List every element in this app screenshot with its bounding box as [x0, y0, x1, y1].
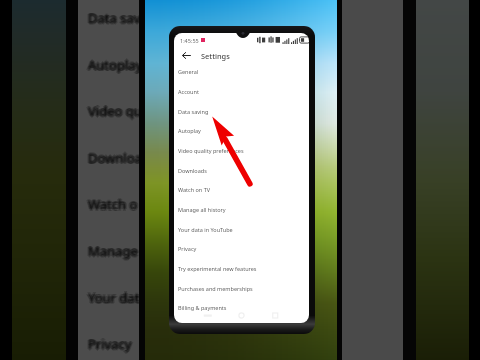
staticText: Your dat: [89, 289, 141, 307]
staticText: Video qu: [89, 103, 143, 121]
staticText: Data sav: [89, 9, 142, 27]
staticText: Video qu: [88, 103, 142, 121]
staticText: Your dat: [87, 287, 139, 305]
staticText: Data sav: [88, 8, 141, 26]
staticText: Data sav: [89, 8, 142, 26]
staticText: Video qu: [87, 101, 141, 119]
button[interactable]: Try experimental new features: [174, 258, 309, 278]
staticText: Data sav: [86, 9, 139, 27]
staticText: Your dat: [88, 287, 140, 305]
staticText: Manage: [89, 242, 139, 260]
staticText: Your dat: [90, 289, 142, 307]
staticText: Watch o: [89, 195, 139, 213]
button[interactable]: Billing & payments: [174, 297, 309, 317]
staticText: Your dat: [88, 289, 140, 307]
staticText: Video qu: [89, 101, 143, 119]
staticText: Video qu: [87, 102, 141, 120]
staticText: Your dat: [88, 290, 140, 308]
staticText: Autoplay: [88, 54, 143, 72]
staticText: Manage: [88, 244, 138, 262]
staticText: Privacy: [87, 334, 131, 352]
staticText: Billing & payments: [178, 304, 227, 311]
staticText: 1:45:55: [180, 37, 199, 44]
staticText: Downloa: [87, 148, 141, 166]
staticText: Your dat: [88, 288, 140, 306]
button[interactable]: Account: [174, 81, 309, 101]
staticText: Data sav: [88, 9, 141, 27]
staticText: Purchases and memberships: [178, 285, 253, 292]
staticText: Video qu: [86, 102, 140, 120]
staticText: Privacy: [178, 245, 197, 252]
staticText: Data sav: [88, 10, 141, 28]
staticText: Manage: [88, 241, 138, 259]
staticText: Autoplay: [87, 56, 142, 74]
staticText: Autoplay: [90, 56, 145, 74]
button[interactable]: Downloads: [174, 160, 309, 180]
staticText: Your data in YouTube: [178, 226, 233, 233]
staticText: Watch o: [86, 195, 136, 213]
staticText: Data sav: [88, 8, 141, 26]
staticText: Watch o: [87, 195, 137, 213]
button[interactable]: Purchases and memberships: [174, 278, 309, 298]
staticText: Autoplay: [178, 127, 201, 134]
staticText: Data sav: [88, 11, 141, 29]
staticText: Manage: [88, 243, 138, 261]
staticText: Autoplay: [88, 56, 143, 74]
staticText: Downloa: [88, 149, 142, 167]
staticText: Data sav: [87, 10, 140, 28]
staticText: Video qu: [88, 101, 142, 119]
staticText: Watch o: [87, 197, 137, 215]
staticText: Manage: [87, 242, 137, 260]
staticText: Downloa: [88, 150, 142, 168]
staticText: Your dat: [89, 290, 141, 308]
button[interactable]: Privacy: [174, 238, 309, 258]
staticText: Your dat: [86, 289, 138, 307]
staticText: Watch o: [89, 197, 139, 215]
staticText: Your dat: [87, 290, 139, 308]
button[interactable]: Back: [179, 48, 194, 63]
button[interactable]: Data saving: [174, 101, 309, 121]
staticText: Watch o: [87, 194, 137, 212]
staticText: Autoplay: [88, 55, 143, 73]
button[interactable]: General: [174, 61, 309, 81]
staticText: Downloa: [89, 150, 143, 168]
staticText: Privacy: [89, 335, 133, 353]
staticText: Manage: [88, 242, 138, 260]
staticText: Downloa: [89, 148, 143, 166]
button[interactable]: Video quality preferences: [174, 140, 309, 160]
staticText: General: [178, 68, 199, 75]
staticText: Downloa: [86, 149, 140, 167]
staticText: Manage all history: [178, 206, 226, 213]
staticText: Watch o: [88, 197, 138, 215]
staticText: Privacy: [87, 336, 131, 354]
staticText: Privacy: [86, 335, 130, 353]
staticText: Watch o: [89, 194, 139, 212]
staticText: Downloa: [88, 150, 142, 168]
staticText: Manage: [90, 242, 140, 260]
staticText: Settings: [201, 51, 230, 61]
staticText: Privacy: [88, 335, 132, 353]
staticText: Manage: [89, 241, 139, 259]
staticText: Data sav: [87, 9, 140, 27]
staticText: Video quality preferences: [178, 147, 244, 154]
staticText: Manage: [87, 241, 137, 259]
staticText: Video qu: [88, 102, 142, 120]
staticText: Your dat: [87, 289, 139, 307]
button[interactable]: Watch on TV: [174, 179, 309, 199]
staticText: Manage: [87, 243, 137, 261]
button[interactable]: Autoplay: [174, 120, 309, 140]
staticText: Privacy: [88, 334, 132, 352]
staticText: Autoplay: [88, 57, 143, 75]
staticText: Autoplay: [89, 57, 144, 75]
staticText: Data sav: [87, 8, 140, 26]
staticText: Privacy: [89, 334, 133, 352]
staticText: Watch o: [88, 195, 138, 213]
staticText: Video qu: [89, 102, 143, 120]
staticText: Privacy: [87, 335, 131, 353]
staticText: Autoplay: [86, 56, 141, 74]
button[interactable]: Your data in YouTube: [174, 219, 309, 239]
staticText: Autoplay: [87, 55, 142, 73]
staticText: Autoplay: [87, 57, 142, 75]
staticText: Downloa: [88, 148, 142, 166]
button[interactable]: Manage all history: [174, 199, 309, 219]
